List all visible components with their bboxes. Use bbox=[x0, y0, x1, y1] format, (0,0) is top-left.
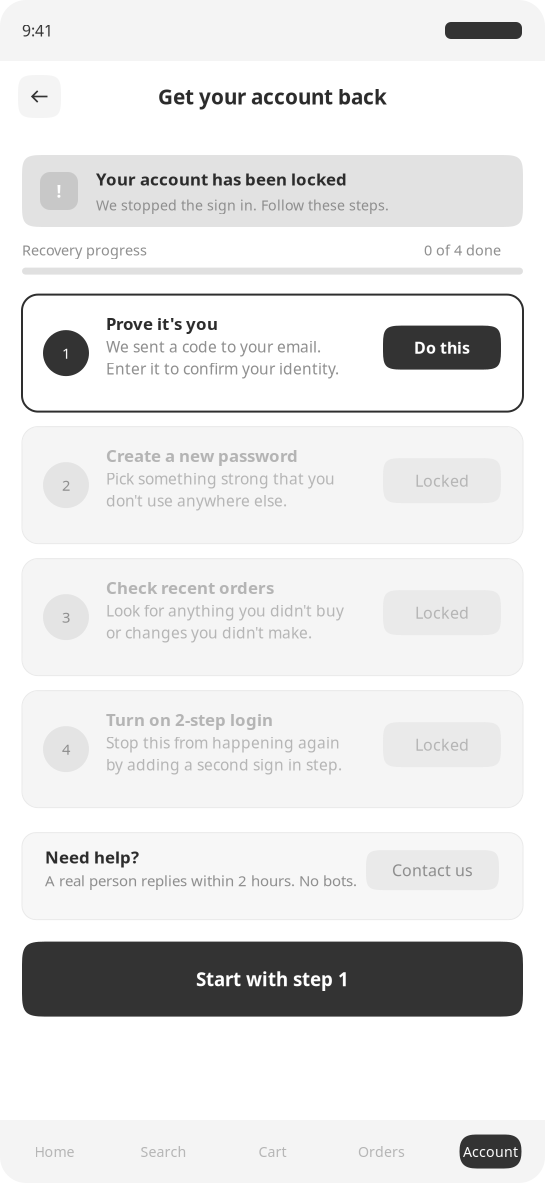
staticText: Need help? bbox=[45, 845, 139, 868]
staticText: Look for anything you didn't buy bbox=[106, 600, 344, 621]
button[interactable]: Account bbox=[436, 1120, 545, 1183]
button[interactable]: Start with step 1 bbox=[22, 942, 523, 1017]
button[interactable]: Do this bbox=[383, 326, 501, 381]
staticText: 0 of 4 done bbox=[424, 240, 501, 260]
staticText: Locked bbox=[415, 470, 469, 491]
staticText: Account bbox=[463, 1142, 518, 1161]
staticText: Locked bbox=[415, 734, 469, 755]
button[interactable]: Contact us bbox=[366, 850, 499, 902]
staticText: Locked bbox=[415, 602, 469, 623]
staticText: 3 bbox=[62, 607, 70, 627]
staticText: by adding a second sign in step. bbox=[106, 754, 342, 775]
staticText: Pick something strong that you bbox=[106, 468, 335, 489]
staticText: We sent a code to your email. bbox=[106, 336, 321, 357]
button[interactable]: Orders bbox=[327, 1120, 436, 1183]
staticText: Contact us bbox=[392, 859, 473, 881]
staticText: ! bbox=[56, 179, 61, 203]
staticText: 1 bbox=[62, 343, 70, 363]
staticText: Do this bbox=[414, 337, 470, 358]
staticText: Prove it's you bbox=[106, 312, 218, 335]
button[interactable]: Locked bbox=[383, 590, 501, 644]
button[interactable]: Locked bbox=[383, 458, 501, 512]
staticText: or changes you didn't make. bbox=[106, 622, 312, 643]
staticText: don't use anywhere else. bbox=[106, 490, 287, 511]
staticText: Cart bbox=[258, 1142, 286, 1161]
staticText: Your account has been locked bbox=[96, 167, 347, 190]
button[interactable]: Locked bbox=[383, 722, 501, 776]
staticText: Search bbox=[140, 1142, 186, 1161]
staticText: We stopped the sign in. Follow these ste… bbox=[96, 195, 389, 214]
button[interactable]: Cart bbox=[218, 1120, 327, 1183]
staticText: Enter it to confirm your identity. bbox=[106, 358, 339, 379]
staticText: Start with step 1 bbox=[196, 966, 349, 992]
staticText: 4 bbox=[62, 739, 70, 759]
staticText: Stop this from happening again bbox=[106, 732, 340, 753]
button[interactable]: Home bbox=[0, 1120, 109, 1183]
staticText: Home bbox=[34, 1142, 74, 1161]
staticText: Check recent orders bbox=[106, 576, 274, 599]
staticText: 2 bbox=[62, 475, 70, 495]
staticText: Create a new password bbox=[106, 444, 298, 467]
button[interactable]: Search bbox=[109, 1120, 218, 1183]
staticText: A real person replies within 2 hours. No… bbox=[45, 870, 357, 891]
staticText: Turn on 2-step login bbox=[106, 708, 273, 731]
staticText: Get your account back bbox=[158, 82, 387, 110]
staticText: 9:41 bbox=[22, 20, 53, 41]
staticText: Recovery progress bbox=[22, 240, 147, 260]
staticText: Orders bbox=[358, 1142, 405, 1161]
button[interactable]: Back bbox=[18, 75, 61, 118]
